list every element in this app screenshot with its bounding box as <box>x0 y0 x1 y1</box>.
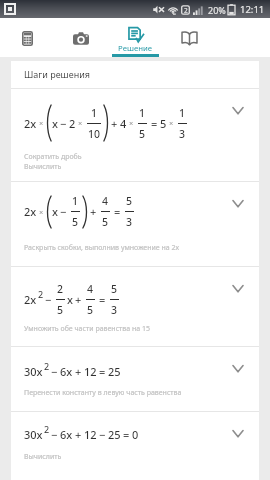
staticText: = <box>99 292 106 307</box>
staticText: Умножить обе части равенства на 15 <box>24 324 151 334</box>
staticText: × <box>169 118 174 128</box>
staticText: × <box>78 118 83 128</box>
staticText: 1 <box>139 106 146 120</box>
staticText: 5 <box>111 282 118 296</box>
staticText: Раскрыть скобки, выполнив умножение на 2… <box>24 243 180 253</box>
staticText: + <box>90 204 97 219</box>
staticText: 4 <box>120 116 127 131</box>
staticText: 6x <box>60 364 73 379</box>
staticText: 10 <box>88 127 101 141</box>
staticText: × <box>39 118 44 128</box>
staticText: − <box>51 364 58 379</box>
staticText: 1 <box>179 106 186 120</box>
staticText: 3 <box>111 303 118 317</box>
staticText: − <box>60 204 67 219</box>
button[interactable]: 2x <box>11 182 259 266</box>
staticText: 5 <box>87 303 94 317</box>
staticText: − <box>45 292 52 307</box>
staticText: 12 <box>84 364 97 379</box>
button[interactable]: Expand <box>231 105 245 119</box>
staticText: 5 <box>57 303 64 317</box>
staticText: Сократить дробь <box>24 152 82 162</box>
staticText: 2 <box>184 6 188 15</box>
staticText: 30x <box>24 427 43 442</box>
staticText: 2 <box>38 288 44 300</box>
staticText: × <box>39 207 44 217</box>
button[interactable]: 2x <box>11 89 259 181</box>
staticText: − <box>99 427 106 442</box>
staticText: 1 <box>72 194 79 208</box>
staticText: 2x <box>24 116 37 131</box>
button[interactable]: Expand <box>231 428 245 442</box>
staticText: 3 <box>179 127 186 141</box>
staticText: − <box>60 116 67 131</box>
button[interactable]: Solution steps <box>108 18 162 57</box>
staticText: 5 <box>126 194 133 208</box>
staticText: 2 <box>57 282 64 296</box>
button[interactable]: 2x <box>11 267 259 346</box>
staticText: 12:11 <box>240 3 265 16</box>
staticText: 4 <box>87 282 94 296</box>
button[interactable]: Calculator <box>0 18 54 57</box>
staticText: 5 <box>102 215 109 229</box>
button[interactable]: Expand <box>231 198 245 212</box>
staticText: Вычислить <box>24 162 62 172</box>
staticText: 25 <box>108 364 121 379</box>
staticText: 3 <box>126 215 133 229</box>
staticText: 5 <box>72 215 79 229</box>
staticText: = <box>123 427 130 442</box>
staticText: + <box>111 116 118 131</box>
button[interactable]: Dictionary <box>162 18 216 57</box>
button[interactable]: 30x <box>11 347 259 411</box>
button[interactable]: Expand <box>231 363 245 377</box>
staticText: − <box>51 427 58 442</box>
staticText: + <box>75 427 82 442</box>
staticText: = <box>99 364 106 379</box>
staticText: Шаги решения <box>24 68 90 80</box>
staticText: 0 <box>132 427 139 442</box>
staticText: 2 <box>69 116 76 131</box>
button[interactable]: Expand <box>231 283 245 297</box>
staticText: + <box>75 364 82 379</box>
staticText: 5 <box>160 116 167 131</box>
button[interactable]: 30x <box>11 412 259 480</box>
staticText: x <box>67 292 73 307</box>
staticText: 20% <box>208 4 226 16</box>
staticText: + <box>75 292 82 307</box>
staticText: 2 <box>44 360 50 372</box>
staticText: x <box>52 116 58 131</box>
staticText: 2x <box>24 292 37 307</box>
staticText: 30x <box>24 364 43 379</box>
staticText: 1 <box>91 106 98 120</box>
staticText: 25 <box>108 427 121 442</box>
staticText: Решение <box>118 43 153 54</box>
staticText: = <box>151 116 158 131</box>
staticText: 12 <box>84 427 97 442</box>
staticText: 6x <box>60 427 73 442</box>
button[interactable]: Camera <box>54 18 108 57</box>
staticText: 2x <box>24 204 37 219</box>
staticText: Перенести константу в левую часть равенс… <box>24 388 182 398</box>
staticText: Вычислить <box>24 452 62 462</box>
staticText: × <box>129 118 134 128</box>
staticText: 5 <box>139 127 146 141</box>
staticText: = <box>114 204 121 219</box>
staticText: 4 <box>102 194 109 208</box>
staticText: x <box>52 204 58 219</box>
staticText: 2 <box>44 423 50 435</box>
